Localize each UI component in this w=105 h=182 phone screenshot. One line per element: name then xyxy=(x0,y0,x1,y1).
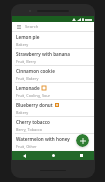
staticText: Lemon pie xyxy=(16,34,40,40)
staticText: Fruit, Bakery xyxy=(16,76,39,81)
staticText: Bakery xyxy=(16,42,29,47)
button[interactable]: Lemonade xyxy=(12,83,94,99)
button[interactable]: Back xyxy=(20,151,29,160)
staticText: Bakery xyxy=(16,110,29,115)
button[interactable]: Lemon pie xyxy=(12,32,94,48)
button[interactable]: Home xyxy=(49,151,58,160)
button[interactable]: Add item xyxy=(76,134,89,147)
staticText: Fruit, Cooling, Sour xyxy=(16,93,51,98)
button[interactable]: Strawberry with banana xyxy=(12,49,94,65)
staticText: Fruit, Other xyxy=(16,144,37,149)
button[interactable]: Recent apps xyxy=(77,151,86,160)
staticText: Strawberry with banana xyxy=(16,51,70,57)
button[interactable]: Cherry tobacco xyxy=(12,117,94,133)
staticText: Blueberry donut xyxy=(16,102,53,108)
staticText: Watermelon with honey xyxy=(16,136,70,142)
staticText: Berry, Tobacco xyxy=(16,127,43,132)
staticText: Cherry tobacco xyxy=(16,119,50,125)
button[interactable]: Watermelon with honey xyxy=(12,134,94,150)
staticText: Cinnamon cookie xyxy=(16,68,55,74)
button[interactable]: Cinnamon cookie xyxy=(12,66,94,82)
staticText: Lemonade xyxy=(16,85,40,91)
staticText: Search xyxy=(25,24,39,30)
staticText: Fruit, Berry xyxy=(16,59,36,64)
button[interactable]: Blueberry donut xyxy=(12,100,94,116)
button[interactable]: Open navigation menu xyxy=(16,24,22,30)
button[interactable]: Open navigation menu xyxy=(12,22,94,32)
